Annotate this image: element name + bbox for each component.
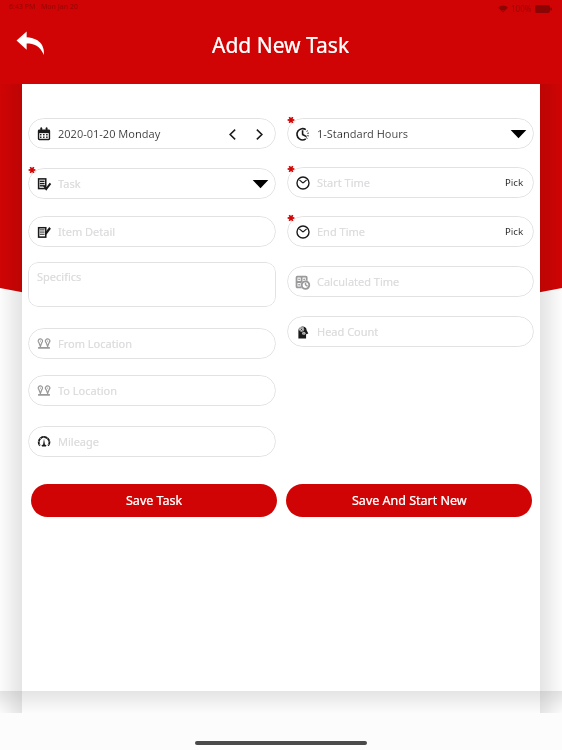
button[interactable]: Save Task [31,484,277,517]
button[interactable]: Next day [248,123,270,145]
button[interactable]: 1-Standard Hours [287,118,534,149]
button[interactable]: From Location [28,328,276,359]
button[interactable]: Previous day [221,123,243,145]
staticText: Mileage [58,434,99,449]
staticText: End Time [317,224,365,239]
staticText: 6:43 PM Mon Jan 20 [9,2,79,12]
staticText: Pick [505,225,524,238]
staticText: To Location [58,383,117,398]
button[interactable]: Specifics [28,262,276,307]
button[interactable]: Task [28,168,276,199]
button[interactable]: Calculated Time [287,266,534,297]
button[interactable]: Back [11,24,49,62]
button[interactable]: Start Time [287,167,534,198]
staticText: Item Detail [58,224,116,239]
staticText: 2020-01-20 Monday [58,126,161,141]
staticText: Add New Task [212,31,350,60]
staticText: Calculated Time [317,274,400,289]
staticText: Head Count [317,324,379,339]
button[interactable]: End Time [287,216,534,247]
button[interactable]: 2020-01-20 Monday [28,118,276,149]
staticText: 1-Standard Hours [317,126,409,141]
staticText: Save Task [126,492,183,509]
button[interactable]: Head Count [287,316,534,347]
staticText: Specifics [37,269,82,284]
button[interactable]: To Location [28,375,276,406]
button[interactable]: Mileage [28,426,276,457]
button[interactable]: Save And Start New [286,484,532,517]
staticText: Pick [505,176,524,189]
staticText: Save And Start New [352,492,467,509]
button[interactable]: Item Detail [28,216,276,247]
staticText: 100% [511,3,532,14]
staticText: Task [58,176,81,191]
staticText: From Location [58,336,132,351]
staticText: Start Time [317,175,370,190]
